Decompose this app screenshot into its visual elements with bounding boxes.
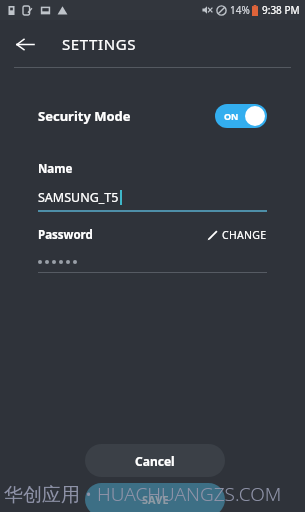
staticText: Security Mode [38,107,131,125]
button[interactable]: SAVE [85,483,225,512]
staticText: Password [38,227,93,243]
staticText: ON [224,110,239,122]
button[interactable]: Security Mode [38,99,267,133]
button[interactable]: Cancel [85,444,225,477]
staticText: CHANGE [222,228,267,242]
staticText: Name [38,161,73,177]
staticText: 华创应用 • HUACHUANGZS.COM [4,481,282,507]
staticText: Cancel [135,453,175,469]
staticText: 14% [230,3,250,17]
staticText: SAVE [142,492,169,507]
staticText: SETTINGS [62,34,136,54]
staticText: 9:38 PM [262,3,300,17]
staticText: SAMSUNG_T5 [38,189,119,206]
button[interactable]: Back [8,27,42,61]
button[interactable]: CHANGE [207,226,267,244]
